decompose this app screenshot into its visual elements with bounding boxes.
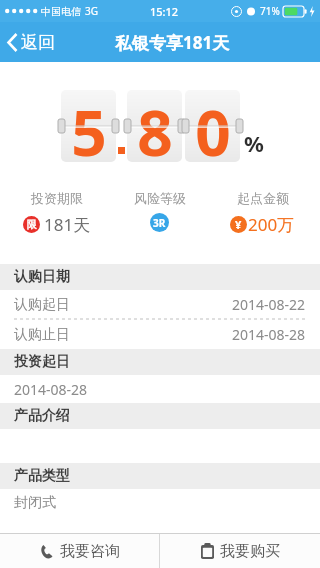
button[interactable]: 认购起日	[0, 290, 320, 320]
staticText: 认购起日	[14, 296, 70, 314]
staticText: 2014-08-28	[232, 325, 306, 344]
button[interactable]: 认购止日	[0, 320, 320, 349]
staticText: 限	[27, 218, 37, 231]
staticText: 3R	[153, 216, 166, 230]
staticText: 我要购买	[220, 542, 280, 561]
staticText: 风险等级	[134, 190, 186, 206]
staticText: 5	[71, 90, 107, 162]
staticText: 投资起日	[14, 353, 70, 371]
staticText: 15:12	[150, 4, 179, 19]
button[interactable]: 封闭式	[0, 489, 320, 517]
staticText: 3G	[85, 4, 98, 18]
staticText: %	[244, 128, 264, 158]
staticText: 封闭式	[14, 494, 56, 512]
button[interactable]: 返回	[0, 28, 63, 57]
button[interactable]: Call	[0, 534, 159, 568]
staticText: 2014-08-22	[232, 295, 306, 314]
staticText: 私银专享181天	[115, 31, 230, 54]
staticText: 我要咨询	[60, 542, 120, 561]
staticText: 200万	[248, 213, 295, 236]
staticText: 2014-08-28	[14, 380, 88, 399]
staticText: ¥	[235, 217, 242, 232]
staticText: 产品介绍	[14, 407, 70, 425]
staticText: 返回	[21, 32, 55, 53]
staticText: 0	[195, 90, 231, 162]
staticText: 认购止日	[14, 326, 70, 344]
button[interactable]: 2014-08-28	[0, 375, 320, 403]
other: Buy	[201, 543, 214, 559]
staticText: 71%	[260, 4, 280, 18]
staticText: 8	[137, 90, 173, 162]
staticText: 181天	[44, 213, 91, 236]
staticText: 产品类型	[14, 467, 70, 485]
staticText: 投资期限	[31, 190, 83, 206]
staticText: 中国电信	[41, 5, 81, 18]
other: Call	[39, 544, 54, 559]
button[interactable]: Buy	[160, 534, 320, 568]
staticText: 认购日期	[14, 268, 70, 286]
staticText: 起点金额	[237, 190, 289, 206]
